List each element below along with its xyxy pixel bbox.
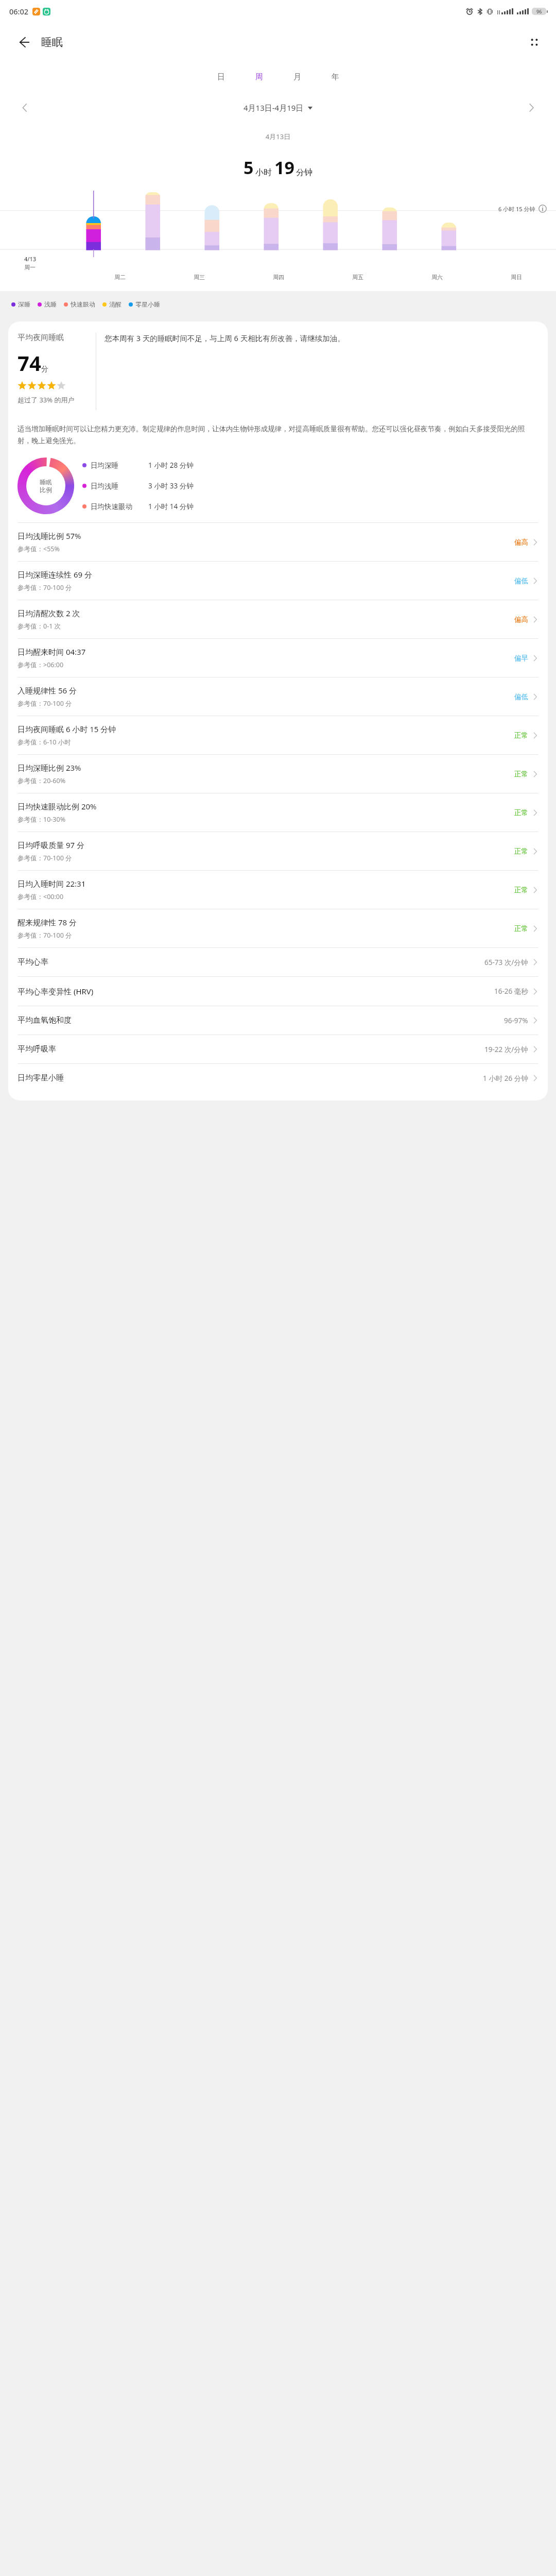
staticText: 浅睡 — [44, 300, 57, 308]
staticText: 3 小时 33 分钟 — [148, 481, 194, 490]
button[interactable]: 日均深睡连续性 69 分 — [18, 561, 538, 600]
staticText: 月 — [293, 72, 301, 82]
staticText: 1 小时 14 分钟 — [148, 502, 194, 511]
staticText: 5 — [244, 156, 254, 179]
staticText: 周二 — [114, 274, 126, 281]
staticText: 日均夜间睡眠 6 小时 15 分钟 — [18, 724, 116, 734]
button[interactable]: Back — [12, 31, 35, 54]
staticText: 日均快速眼动 — [91, 502, 148, 511]
button[interactable]: 月 — [278, 62, 316, 92]
staticText: 6 小时 15 分钟 — [498, 205, 535, 213]
button[interactable]: More options — [523, 31, 546, 54]
staticText: 日均入睡时间 22:31 — [18, 878, 86, 889]
button[interactable]: 周 — [240, 62, 278, 92]
button[interactable]: 年 — [316, 62, 354, 92]
staticText: 分钟 — [296, 167, 312, 178]
staticText: 4月13日-4月19日 — [244, 103, 304, 113]
button[interactable]: 平均血氧饱和度 — [18, 1006, 538, 1035]
staticText: 日均浅睡 — [91, 482, 148, 490]
staticText: 周一 — [24, 264, 36, 271]
button[interactable]: 醒来规律性 78 分 — [18, 909, 538, 947]
staticText: 1 小时 28 分钟 — [148, 461, 194, 470]
staticText: 周三 — [194, 274, 205, 281]
staticText: 日均浅睡比例 57% — [18, 531, 81, 541]
staticText: 比例 — [40, 486, 52, 494]
staticText: 偏高 — [514, 538, 528, 547]
staticText: 周四 — [273, 274, 284, 281]
button[interactable]: Previous week — [14, 97, 35, 118]
staticText: 参考值：70-100 分 — [18, 699, 72, 708]
staticText: 年 — [332, 72, 339, 82]
staticText: 深睡 — [18, 300, 30, 308]
staticText: 日均深睡比例 23% — [18, 762, 81, 773]
staticText: 您本周有 3 天的睡眠时间不足，与上周 6 天相比有所改善，请继续加油。 — [105, 333, 538, 343]
staticText: 周 — [255, 72, 263, 82]
staticText: 1 小时 26 分钟 — [483, 1074, 528, 1083]
staticText: 周六 — [431, 274, 443, 281]
button[interactable]: 日均夜间睡眠 6 小时 15 分钟 — [18, 716, 538, 754]
staticText: 周五 — [352, 274, 363, 281]
button[interactable]: 平均呼吸率 — [18, 1035, 538, 1063]
staticText: 零星小睡 — [135, 300, 160, 308]
staticText: 适当增加睡眠时间可以让您精力更充沛。制定规律的作息时间，让体内生物钟形成规律，对… — [18, 425, 538, 445]
staticText: 正常 — [514, 731, 528, 740]
staticText: 平均心率变异性 (HRV) — [18, 986, 494, 996]
button[interactable]: 入睡规律性 56 分 — [18, 677, 538, 716]
staticText: 日均清醒次数 2 次 — [18, 608, 80, 618]
staticText: 参考值：>06:00 — [18, 660, 64, 669]
staticText: 偏低 — [514, 577, 528, 585]
staticText: 正常 — [514, 924, 528, 933]
button[interactable]: 日 — [202, 62, 240, 92]
staticText: 正常 — [514, 770, 528, 778]
staticText: 19-22 次/分钟 — [484, 1045, 528, 1054]
staticText: 偏早 — [514, 654, 528, 663]
staticText: 小时 — [255, 167, 272, 178]
staticText: 日 — [217, 72, 225, 82]
staticText: 4/13 — [24, 255, 37, 263]
staticText: 清醒 — [109, 300, 121, 308]
button[interactable]: 日均零星小睡 — [18, 1063, 538, 1092]
staticText: 参考值：<55% — [18, 545, 60, 553]
staticText: 入睡规律性 56 分 — [18, 685, 77, 696]
button[interactable]: 日均深睡比例 23% — [18, 754, 538, 793]
staticText: 周日 — [511, 274, 522, 281]
staticText: 06:02 — [9, 6, 29, 16]
button[interactable]: 日均入睡时间 22:31 — [18, 870, 538, 909]
staticText: 分 — [41, 365, 48, 374]
staticText: 偏低 — [514, 692, 528, 701]
button[interactable]: Info — [538, 205, 547, 213]
staticText: 19 — [274, 156, 294, 179]
staticText: 正常 — [514, 808, 528, 817]
staticText: 参考值：<00:00 — [18, 892, 64, 901]
staticText: 正常 — [514, 847, 528, 856]
button[interactable]: Next week — [521, 97, 542, 118]
staticText: 96-97% — [504, 1016, 528, 1025]
button[interactable]: 日均醒来时间 04:37 — [18, 638, 538, 677]
button[interactable]: 日均呼吸质量 97 分 — [18, 832, 538, 870]
staticText: 参考值：70-100 分 — [18, 854, 72, 862]
staticText: 日均零星小睡 — [18, 1073, 483, 1083]
staticText: 参考值：10-30% — [18, 815, 66, 824]
button[interactable]: 平均心率 — [18, 947, 538, 976]
staticText: 16-26 毫秒 — [494, 987, 528, 996]
staticText: 平均血氧饱和度 — [18, 1015, 504, 1025]
button[interactable]: 日均清醒次数 2 次 — [18, 600, 538, 638]
button[interactable]: 日均浅睡比例 57% — [18, 522, 538, 561]
staticText: 平均呼吸率 — [18, 1044, 484, 1054]
staticText: 参考值：70-100 分 — [18, 583, 72, 592]
staticText: 4月13日 — [0, 132, 556, 141]
button[interactable]: 平均心率变异性 (HRV) — [18, 976, 538, 1006]
staticText: 参考值：6-10 小时 — [18, 738, 71, 747]
staticText: 醒来规律性 78 分 — [18, 917, 77, 927]
staticText: 偏高 — [514, 615, 528, 624]
staticText: 日均呼吸质量 97 分 — [18, 840, 84, 850]
staticText: 96 — [536, 8, 542, 14]
staticText: 日均醒来时间 04:37 — [18, 647, 86, 657]
staticText: 参考值：0-1 次 — [18, 622, 61, 631]
button[interactable]: 日均快速眼动比例 20% — [18, 793, 538, 832]
staticText: 参考值：20-60% — [18, 776, 66, 785]
staticText: 快速眼动 — [71, 300, 95, 308]
staticText: 平均心率 — [18, 957, 484, 967]
staticText: 超过了 33% 的用户 — [18, 395, 75, 404]
staticText: 日均快速眼动比例 20% — [18, 801, 97, 811]
